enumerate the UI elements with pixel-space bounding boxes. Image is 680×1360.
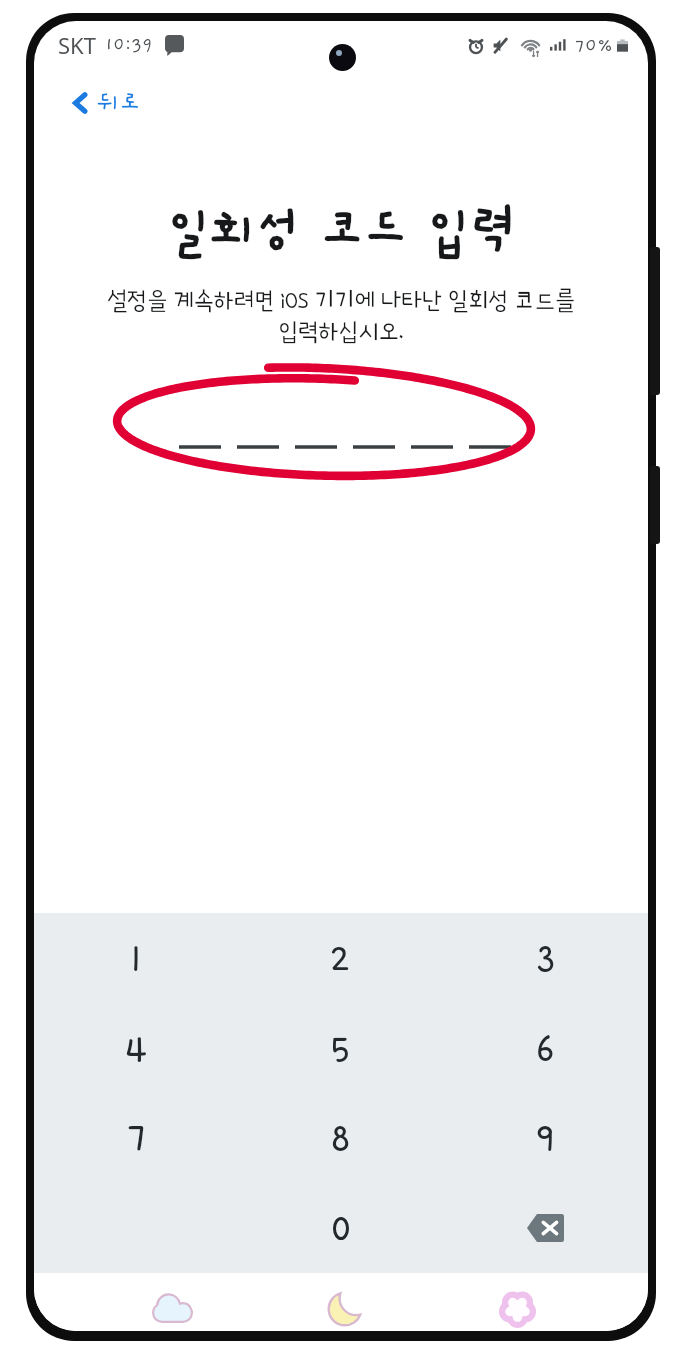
- staticText: 설정을 계속하려면 iOS 기기에 나타난 일회성 코드를 입력하십시오.: [52, 288, 630, 344]
- button[interactable]: Backspace: [443, 1183, 648, 1273]
- staticText: 3: [536, 936, 555, 980]
- button[interactable]: 1: [34, 913, 238, 1003]
- staticText: 70%: [575, 35, 614, 56]
- other: Backspace: [527, 1214, 564, 1242]
- staticText: 1: [131, 936, 141, 980]
- staticText: 뒤로: [98, 90, 141, 116]
- button[interactable]: Moon: [258, 1284, 431, 1331]
- button[interactable]: 5: [238, 1003, 443, 1093]
- staticText: 2: [330, 936, 351, 980]
- staticText: 6: [536, 1026, 555, 1070]
- button[interactable]: 7: [34, 1093, 238, 1183]
- staticText: 5: [331, 1026, 350, 1070]
- button[interactable]: 뒤로: [67, 84, 147, 122]
- button[interactable]: 4: [34, 1003, 238, 1093]
- button[interactable]: 6: [443, 1003, 648, 1093]
- button[interactable]: 9: [443, 1093, 648, 1183]
- staticText: SKT: [58, 30, 96, 60]
- button[interactable]: 3: [443, 913, 648, 1003]
- button[interactable]: Cloud: [86, 1284, 258, 1331]
- staticText: 10:39: [105, 35, 153, 55]
- button[interactable]: 2: [238, 913, 443, 1003]
- staticText: 9: [536, 1116, 555, 1160]
- staticText: 일회성 코드 입력: [34, 203, 648, 259]
- staticText: 4: [125, 1026, 148, 1070]
- button[interactable]: 8: [238, 1093, 443, 1183]
- button[interactable]: Flower: [431, 1284, 604, 1331]
- button[interactable]: [238, 1183, 443, 1273]
- staticText: 8: [331, 1116, 350, 1160]
- staticText: 7: [127, 1116, 145, 1160]
